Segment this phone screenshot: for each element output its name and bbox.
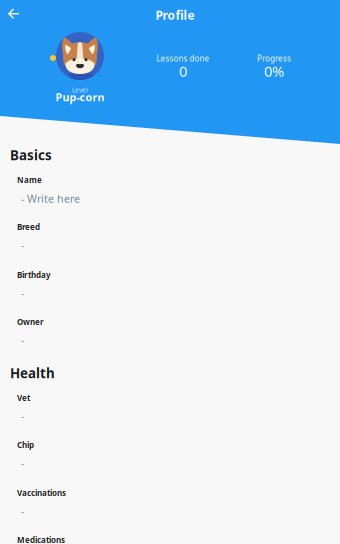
button[interactable]: Vaccinations xyxy=(17,488,317,517)
staticText: Lessons done xyxy=(156,53,209,64)
button[interactable]: Owner xyxy=(17,317,317,346)
staticText: Profile xyxy=(155,7,194,23)
button[interactable]: Birthday xyxy=(17,270,317,299)
staticText: Birthday xyxy=(17,270,51,280)
staticText: - xyxy=(21,287,24,300)
staticText: 0 xyxy=(179,61,187,81)
staticText: Medications xyxy=(17,535,65,544)
staticText: Vet xyxy=(17,393,30,403)
staticText: Pup-corn xyxy=(55,90,104,104)
button[interactable]: Chip xyxy=(17,440,317,469)
staticText: - xyxy=(21,410,24,423)
staticText: - xyxy=(21,457,24,470)
staticText: Basics xyxy=(10,146,52,164)
button[interactable]: Vet xyxy=(17,393,317,422)
button[interactable]: Medications xyxy=(17,535,317,544)
staticText: - xyxy=(21,505,24,518)
staticText: - Write here xyxy=(21,191,80,206)
button[interactable]: Breed xyxy=(17,222,317,251)
staticText: Progress xyxy=(257,53,291,64)
staticText: Breed xyxy=(17,222,40,232)
button[interactable]: Back xyxy=(0,0,30,28)
staticText: Name xyxy=(17,175,42,185)
staticText: - xyxy=(21,334,24,347)
staticText: - xyxy=(21,239,24,252)
staticText: Level xyxy=(72,86,88,94)
staticText: 0% xyxy=(264,61,284,81)
staticText: Owner xyxy=(17,317,44,327)
button[interactable]: Name xyxy=(17,175,317,204)
staticText: Chip xyxy=(17,440,34,450)
staticText: Vaccinations xyxy=(17,488,66,498)
staticText: Health xyxy=(10,364,55,382)
